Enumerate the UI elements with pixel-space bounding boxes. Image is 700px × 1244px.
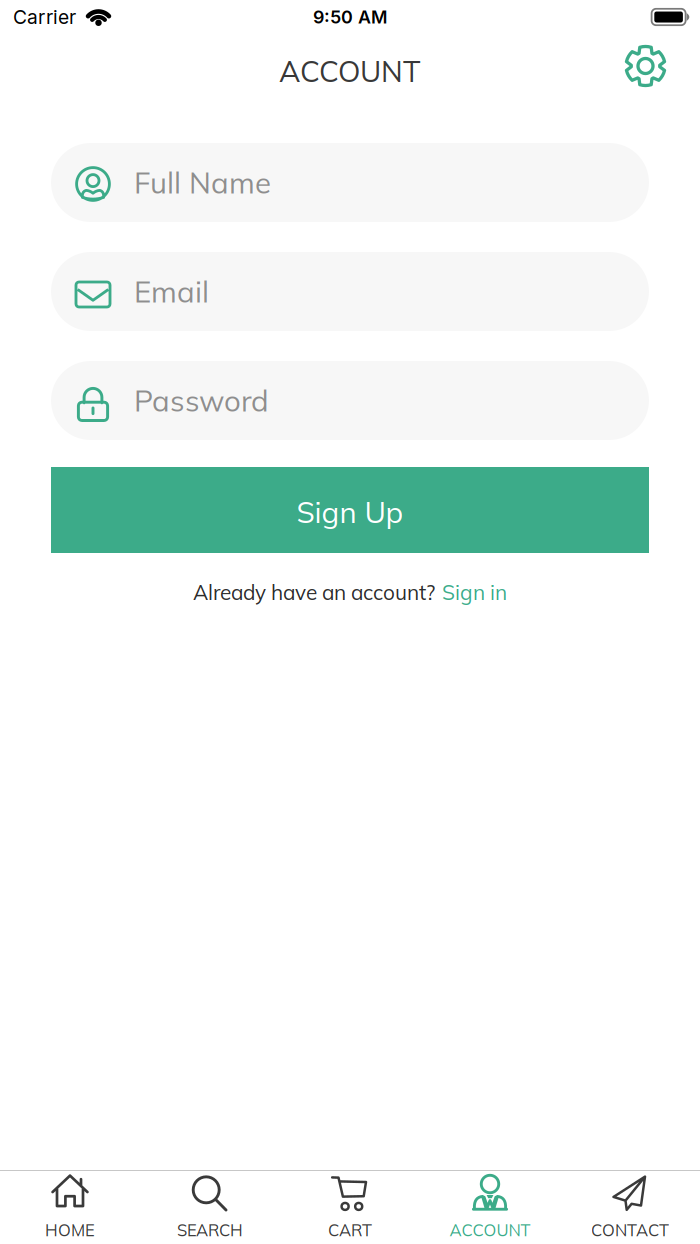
- staticText: Email: [134, 273, 209, 310]
- button[interactable]: Settings: [625, 45, 666, 86]
- button[interactable]: CART: [280, 1177, 420, 1241]
- staticText: ACCOUNT: [449, 1220, 530, 1240]
- button[interactable]: ACCOUNT: [420, 1177, 560, 1241]
- button[interactable]: Email: [51, 252, 649, 331]
- staticText: HOME: [45, 1220, 95, 1240]
- staticText: Password: [134, 382, 269, 419]
- staticText: 9:50 AM: [313, 6, 387, 28]
- button[interactable]: Sign Up: [51, 467, 649, 553]
- button[interactable]: SEARCH: [140, 1177, 280, 1241]
- button[interactable]: HOME: [0, 1177, 140, 1241]
- staticText: CART: [328, 1220, 372, 1240]
- staticText: Sign Up: [296, 494, 403, 530]
- staticText: ACCOUNT: [279, 53, 421, 89]
- staticText: SEARCH: [177, 1220, 243, 1240]
- staticText: Already have an account?: [193, 579, 435, 605]
- button[interactable]: CONTACT: [560, 1177, 700, 1241]
- staticText: Carrier: [13, 5, 76, 29]
- staticText: CONTACT: [591, 1220, 669, 1240]
- button[interactable]: Sign in: [442, 579, 507, 605]
- staticText: Full Name: [134, 164, 271, 201]
- button[interactable]: Full Name: [51, 143, 649, 222]
- staticText: Sign in: [442, 579, 507, 605]
- button[interactable]: Password: [51, 361, 649, 440]
